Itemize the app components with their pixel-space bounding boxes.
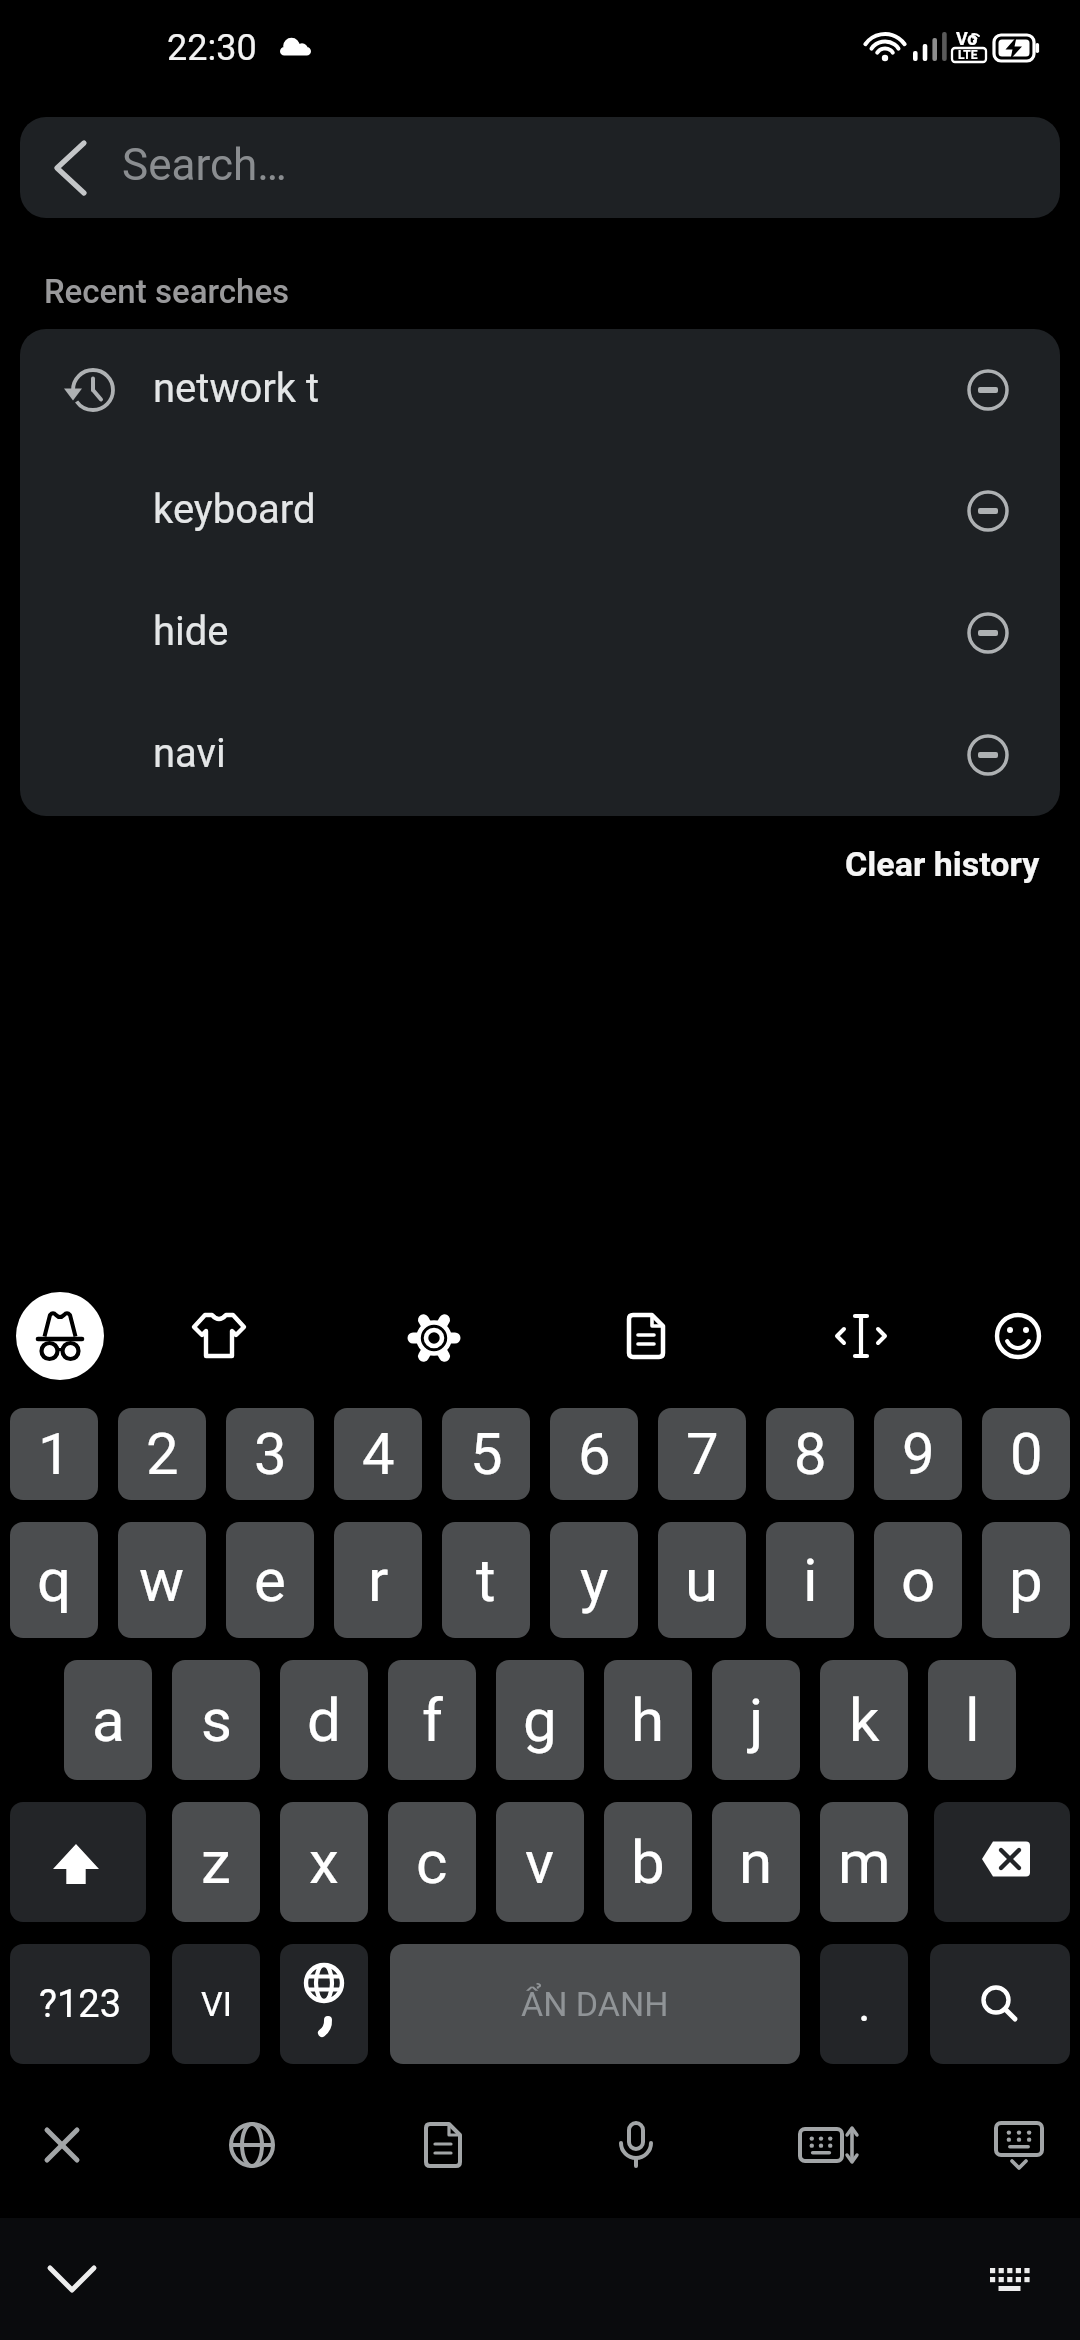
button[interactable] (415, 2117, 471, 2173)
button[interactable]: w (118, 1522, 206, 1638)
button[interactable]: keyboard (20, 450, 1060, 572)
button[interactable]: g (496, 1660, 584, 1780)
button[interactable] (404, 1308, 464, 1368)
button[interactable]: 8 (766, 1408, 854, 1500)
button[interactable]: ẨN DANH (390, 1944, 800, 2064)
button[interactable]: t (442, 1522, 530, 1638)
button[interactable]: 9 (874, 1408, 962, 1500)
button[interactable]: 7 (658, 1408, 746, 1500)
staticText: 6 (578, 1420, 611, 1488)
button[interactable]: network t (20, 329, 1060, 451)
button[interactable] (16, 1292, 104, 1380)
staticText: h (631, 1685, 665, 1755)
staticText: r (368, 1545, 389, 1615)
button[interactable] (796, 2117, 860, 2181)
button[interactable]: 1 (10, 1408, 98, 1500)
button[interactable]: . (820, 1944, 908, 2064)
button[interactable] (831, 1306, 891, 1366)
button[interactable]: c (388, 1802, 476, 1922)
button[interactable]: e (226, 1522, 314, 1638)
staticText: e (254, 1545, 286, 1615)
button[interactable]: 3 (226, 1408, 314, 1500)
staticText: a (92, 1685, 125, 1755)
button[interactable]: v (496, 1802, 584, 1922)
button[interactable]: u (658, 1522, 746, 1638)
button[interactable]: Clear history (660, 838, 1040, 890)
button[interactable]: y (550, 1522, 638, 1638)
button[interactable]: s (172, 1660, 260, 1780)
button[interactable]: Search… (20, 117, 1060, 218)
staticText: 22:30 (167, 27, 257, 69)
button[interactable]: k (820, 1660, 908, 1780)
button[interactable]: d (280, 1660, 368, 1780)
button[interactable]: r (334, 1522, 422, 1638)
button[interactable] (934, 1802, 1070, 1922)
button[interactable]: i (766, 1522, 854, 1638)
button[interactable] (608, 2117, 664, 2173)
staticText: v (525, 1827, 555, 1897)
button[interactable]: q (10, 1522, 98, 1638)
staticText: x (309, 1827, 339, 1897)
staticText: 5 (470, 1420, 503, 1488)
button[interactable] (988, 1306, 1048, 1366)
staticText: b (631, 1827, 665, 1897)
staticText: 3 (254, 1420, 287, 1488)
staticText: 4 (362, 1420, 395, 1488)
staticText: 2 (146, 1420, 179, 1488)
staticText: . (858, 1976, 871, 2032)
staticText: Clear history (845, 844, 1040, 884)
button[interactable]: l (928, 1660, 1016, 1780)
button[interactable] (616, 1306, 676, 1366)
button[interactable]: ?123 (10, 1944, 150, 2064)
button[interactable] (189, 1306, 249, 1366)
staticText: ?123 (39, 1982, 122, 2027)
staticText: 0 (1010, 1420, 1043, 1488)
button[interactable] (34, 2117, 90, 2173)
button[interactable]: navi (20, 694, 1060, 816)
staticText: y (580, 1545, 609, 1615)
button[interactable]: j (712, 1660, 800, 1780)
button[interactable]: VI (172, 1944, 260, 2064)
staticText: n (739, 1827, 773, 1897)
staticText: 1 (38, 1420, 71, 1488)
staticText: z (201, 1827, 231, 1897)
button[interactable]: 0 (982, 1408, 1070, 1500)
button[interactable]: x (280, 1802, 368, 1922)
button[interactable]: 4 (334, 1408, 422, 1500)
button[interactable]: hide (20, 572, 1060, 694)
button[interactable] (991, 2117, 1047, 2173)
button[interactable]: h (604, 1660, 692, 1780)
button[interactable]: p (982, 1522, 1070, 1638)
button[interactable]: z (172, 1802, 260, 1922)
staticText: Search… (122, 139, 287, 191)
button[interactable] (930, 1944, 1070, 2064)
button[interactable]: f (388, 1660, 476, 1780)
staticText: s (201, 1685, 232, 1755)
staticText: Vo (956, 28, 978, 49)
staticText: i (803, 1545, 818, 1615)
staticText: network t (153, 365, 320, 412)
button[interactable]: 6 (550, 1408, 638, 1500)
button[interactable] (224, 2117, 280, 2173)
staticText: k (849, 1685, 880, 1755)
button[interactable] (36, 2243, 108, 2315)
staticText: q (37, 1545, 72, 1615)
button[interactable]: n (712, 1802, 800, 1922)
staticText: j (749, 1685, 764, 1755)
button[interactable] (10, 1802, 146, 1922)
button[interactable] (280, 1944, 368, 2064)
button[interactable]: 5 (442, 1408, 530, 1500)
button[interactable]: b (604, 1802, 692, 1922)
button[interactable]: a (64, 1660, 152, 1780)
staticText: 9 (902, 1420, 935, 1488)
staticText: 8 (794, 1420, 827, 1488)
button[interactable]: 2 (118, 1408, 206, 1500)
button[interactable]: o (874, 1522, 962, 1638)
staticText: t (476, 1545, 496, 1615)
staticText: hide (153, 608, 229, 655)
staticText: g (523, 1685, 557, 1755)
button[interactable] (981, 2250, 1037, 2306)
staticText: keyboard (153, 486, 316, 533)
staticText: Recent searches (44, 272, 290, 311)
button[interactable]: m (820, 1802, 908, 1922)
